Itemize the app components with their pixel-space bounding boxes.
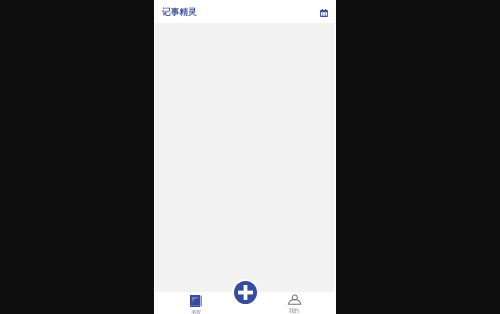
button[interactable]: Calendar: [314, 3, 333, 22]
button[interactable]: 书写: [179, 292, 213, 314]
button[interactable]: 我的: [277, 292, 311, 314]
button[interactable]: Add note: [232, 279, 258, 305]
staticText: 书写: [191, 309, 201, 314]
staticText: 我的: [289, 307, 299, 313]
staticText: 记事精灵: [162, 7, 197, 18]
